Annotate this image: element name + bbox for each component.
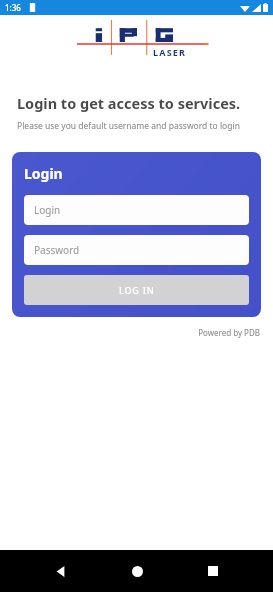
staticText: LASER <box>153 46 187 58</box>
button[interactable]: Home <box>120 554 154 588</box>
button[interactable]: Password <box>24 235 249 265</box>
staticText: Login <box>24 164 63 183</box>
staticText: LOG IN <box>119 284 155 296</box>
button[interactable]: LOG IN <box>24 275 249 305</box>
button[interactable]: Login <box>24 195 249 225</box>
staticText: Login <box>34 203 61 217</box>
staticText: Please use you default username and pass… <box>17 120 240 132</box>
button[interactable]: Back <box>43 554 77 588</box>
staticText: Password <box>34 243 80 257</box>
staticText: Login to get access to services. <box>17 93 241 113</box>
button[interactable]: Recent apps <box>196 554 230 588</box>
staticText: 1:36 <box>5 2 21 13</box>
staticText: Powered by PDB <box>0 327 260 338</box>
